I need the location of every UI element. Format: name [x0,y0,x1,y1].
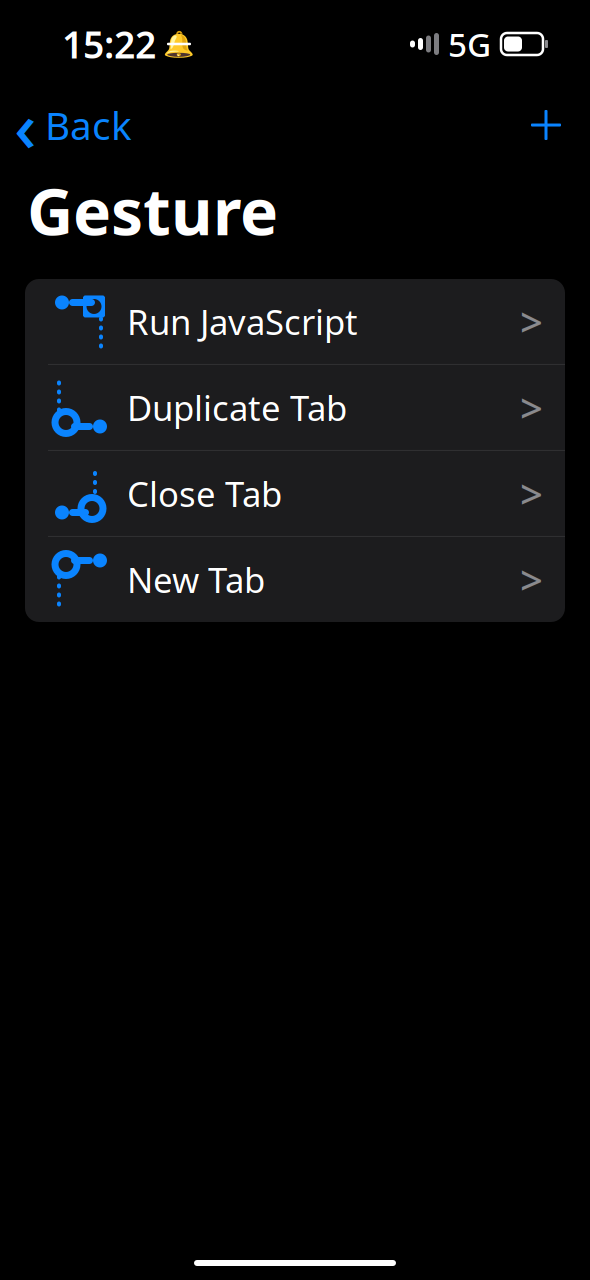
staticText: 5G [448,22,491,66]
staticText: Back [45,99,132,151]
staticText: Close Tab [127,470,282,516]
staticText: 15:22 [62,19,156,69]
staticText: > [520,553,543,606]
staticText: Gesture [27,168,278,253]
staticText: ‹ [14,79,37,171]
button[interactable]: Run JavaScript [25,279,565,364]
staticText: > [520,295,543,348]
button[interactable]: Duplicate Tab [25,365,565,450]
button[interactable]: Close Tab [25,451,565,536]
staticText: New Tab [127,556,265,602]
button[interactable]: Add gesture [520,99,590,151]
button[interactable]: New Tab [25,537,565,622]
staticText: Run JavaScript [127,298,358,344]
staticText: 🔔 [163,29,195,58]
staticText: > [520,381,543,434]
button[interactable]: ‹ [0,75,132,175]
staticText: Duplicate Tab [127,384,347,430]
staticText: > [520,467,543,520]
